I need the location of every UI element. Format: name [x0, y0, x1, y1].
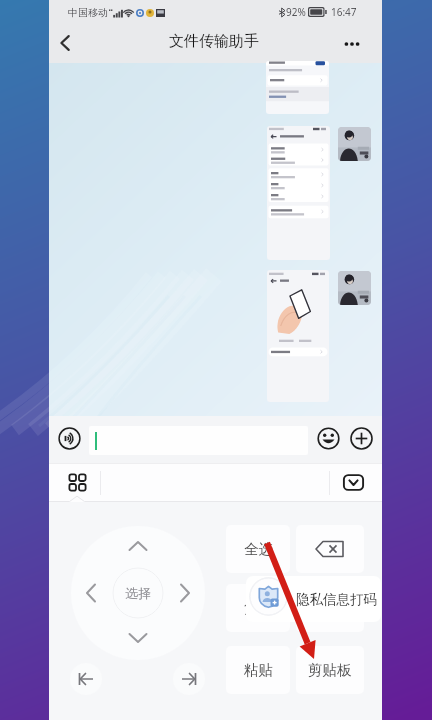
- staticText: 剪切: [316, 599, 345, 617]
- button[interactable]: Back: [46, 24, 84, 62]
- button[interactable]: More options: [333, 24, 371, 62]
- button[interactable]: Voice message: [53, 422, 86, 455]
- button[interactable]: 粘贴: [226, 646, 290, 694]
- button[interactable]: Emoji: [312, 422, 345, 455]
- button[interactable]: 复制: [226, 584, 290, 632]
- button[interactable]: Input methods: [59, 464, 96, 501]
- staticText: 92%: [286, 5, 306, 19]
- button[interactable]: [338, 271, 371, 305]
- staticText: 全选: [244, 540, 273, 558]
- button[interactable]: Hide keyboard: [335, 464, 372, 501]
- button[interactable]: [267, 126, 330, 260]
- staticText: 隐私信息打码: [296, 591, 377, 608]
- button[interactable]: 选择: [71, 526, 205, 660]
- button[interactable]: 全选: [226, 525, 290, 573]
- button[interactable]: Move to line start: [70, 663, 102, 695]
- button[interactable]: Backspace: [296, 525, 364, 573]
- staticText: 粘贴: [244, 661, 273, 679]
- button[interactable]: Move to line end: [173, 663, 205, 695]
- button[interactable]: [89, 426, 308, 455]
- staticText: 复制: [244, 599, 273, 617]
- staticText: 中国移动: [68, 6, 108, 19]
- button[interactable]: [246, 576, 381, 622]
- staticText: 16:47: [331, 5, 357, 19]
- staticText: 文件传输助手: [169, 32, 259, 51]
- button[interactable]: 剪贴板: [296, 646, 364, 694]
- button[interactable]: 剪切: [296, 584, 364, 632]
- staticText: 选择: [125, 585, 151, 601]
- button[interactable]: [267, 270, 329, 402]
- button[interactable]: More functions: [345, 422, 378, 455]
- button[interactable]: [338, 127, 371, 161]
- button[interactable]: [266, 61, 329, 114]
- staticText: 剪贴板: [308, 661, 352, 679]
